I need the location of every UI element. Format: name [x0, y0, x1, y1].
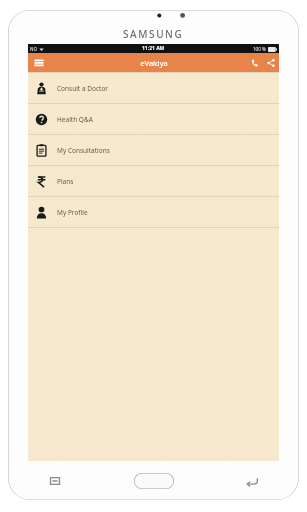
staticText: Plans	[57, 177, 74, 186]
staticText: Health Q&A	[57, 115, 93, 124]
button[interactable]: My Profile	[28, 197, 279, 227]
staticText: 11:21 AM	[142, 45, 165, 52]
button[interactable]: My Consultations	[28, 135, 279, 165]
staticText: SAMSUNG	[123, 27, 184, 41]
button[interactable]: Plans	[28, 166, 279, 196]
staticText: eVaidya	[140, 58, 168, 68]
button[interactable]: Call	[247, 53, 263, 72]
button[interactable]: Back	[205, 461, 299, 500]
staticText: 100 %	[253, 46, 266, 52]
button[interactable]: Health Q&A	[28, 104, 279, 134]
button[interactable]: Consult a Doctor	[28, 73, 279, 103]
button[interactable]: Share	[263, 53, 279, 72]
button[interactable]: Open navigation menu	[28, 53, 50, 72]
button[interactable]: Home	[102, 461, 205, 500]
button[interactable]: Recents	[8, 461, 102, 500]
staticText: My Profile	[57, 208, 88, 217]
staticText: My Consultations	[57, 146, 110, 155]
staticText: NO	[30, 46, 37, 52]
staticText: Consult a Doctor	[57, 84, 108, 93]
